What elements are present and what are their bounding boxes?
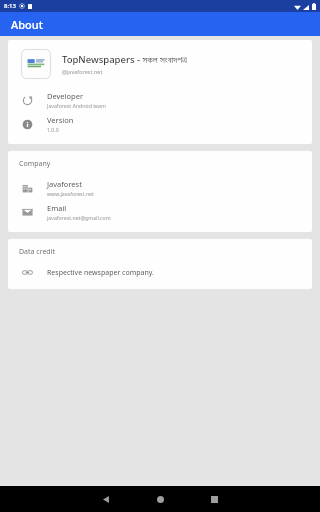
button[interactable]: Home	[140, 486, 180, 512]
staticText: @javaforest.net	[62, 68, 103, 75]
staticText: Javaforest Android team	[47, 102, 106, 109]
staticText: TopNewspapers - সকল সংবাদপত্র	[62, 53, 187, 66]
staticText: Javaforest	[47, 179, 82, 189]
button[interactable]: Javaforest	[8, 176, 312, 200]
button[interactable]: Email	[8, 200, 312, 224]
staticText: Developer	[47, 91, 84, 101]
staticText: About	[11, 17, 43, 32]
staticText: javaforest.net@gmail.com	[47, 214, 111, 221]
staticText: Company	[19, 159, 51, 169]
staticText: Email	[47, 203, 67, 213]
staticText: www.javaforest.net	[47, 190, 94, 197]
button[interactable]: Back	[86, 486, 126, 512]
staticText: Data credit	[19, 247, 56, 257]
button[interactable]: Recent apps	[194, 486, 234, 512]
staticText: 1.0.0	[47, 126, 59, 133]
staticText: Version	[47, 115, 74, 125]
staticText: 8:13	[4, 2, 16, 10]
button[interactable]: Respective newspaper company.	[8, 265, 312, 280]
button[interactable]: Developer	[8, 88, 312, 112]
staticText: Respective newspaper company.	[47, 268, 154, 278]
button[interactable]: Version	[8, 112, 312, 136]
